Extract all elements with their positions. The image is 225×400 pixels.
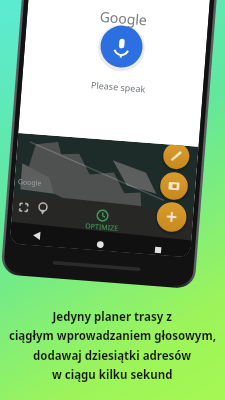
button[interactable]: Route planner promo screen: [0, 0, 225, 400]
